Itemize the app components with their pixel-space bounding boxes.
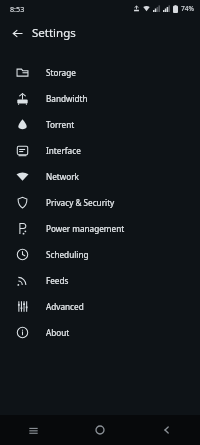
staticText: Settings: [32, 25, 76, 41]
staticText: Privacy & Security: [46, 197, 115, 208]
staticText: Advanced: [46, 301, 84, 312]
button[interactable]: Home: [66, 415, 133, 445]
button[interactable]: Power management: [0, 215, 200, 241]
button[interactable]: Privacy & Security: [0, 189, 200, 215]
staticText: Power management: [46, 223, 125, 234]
button[interactable]: Recents: [0, 415, 66, 445]
button[interactable]: Scheduling: [0, 241, 200, 267]
button[interactable]: Storage: [0, 59, 200, 85]
staticText: About: [46, 327, 70, 338]
button[interactable]: About: [0, 319, 200, 345]
button[interactable]: Back: [7, 23, 27, 43]
button[interactable]: Advanced: [0, 293, 200, 319]
staticText: Feeds: [46, 275, 69, 286]
button[interactable]: Feeds: [0, 267, 200, 293]
staticText: Scheduling: [46, 249, 89, 260]
staticText: Storage: [46, 67, 76, 78]
staticText: 74%: [181, 4, 195, 13]
button[interactable]: Bandwidth: [0, 85, 200, 111]
staticText: Bandwidth: [46, 93, 88, 104]
staticText: 8:53: [10, 4, 25, 14]
staticText: Interface: [46, 145, 81, 156]
button[interactable]: Interface: [0, 137, 200, 163]
staticText: Network: [46, 171, 79, 182]
staticText: Torrent: [46, 119, 75, 130]
button[interactable]: Network: [0, 163, 200, 189]
button[interactable]: Back: [133, 415, 200, 445]
button[interactable]: Torrent: [0, 111, 200, 137]
